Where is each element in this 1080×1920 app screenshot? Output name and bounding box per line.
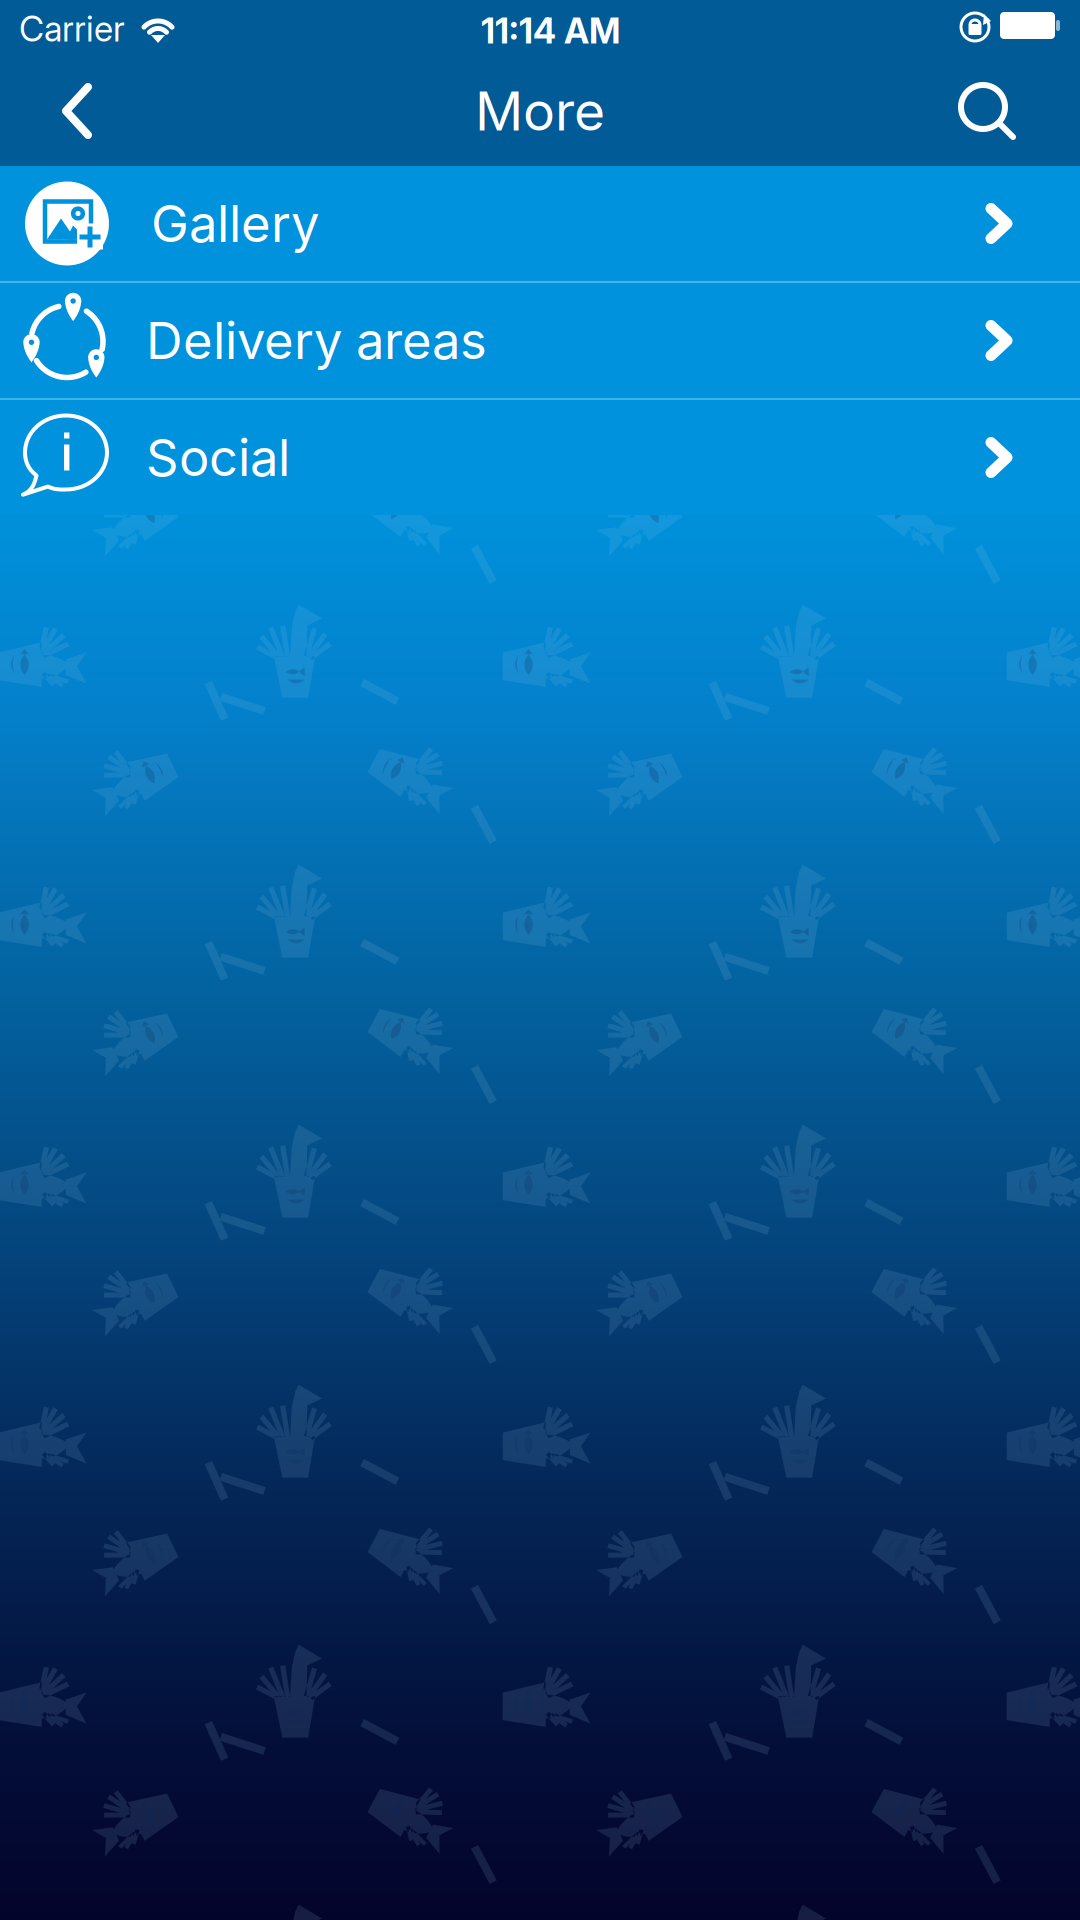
staticText: Social xyxy=(146,427,290,488)
staticText: Carrier xyxy=(19,8,125,50)
staticText: Delivery areas xyxy=(146,310,487,371)
button[interactable]: Search xyxy=(939,59,1035,163)
staticText: 11:14 AM xyxy=(481,10,620,52)
button[interactable]: Social xyxy=(0,400,1080,515)
button[interactable]: Delivery areas xyxy=(0,283,1080,398)
button[interactable]: Back xyxy=(29,59,125,163)
staticText: Gallery xyxy=(151,193,319,254)
button[interactable]: Gallery xyxy=(0,166,1080,281)
staticText: More xyxy=(475,79,605,143)
